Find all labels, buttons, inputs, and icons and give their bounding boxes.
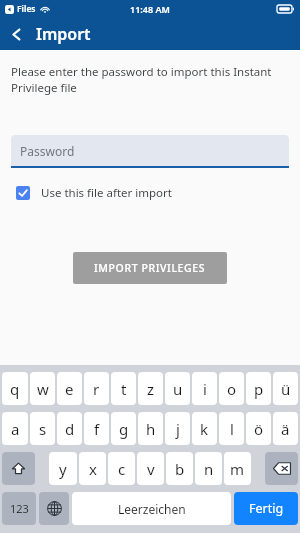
button[interactable]: Change keyboard language — [39, 492, 69, 525]
staticText: c — [118, 459, 126, 479]
button[interactable]: t — [111, 372, 136, 405]
button[interactable]: ü — [273, 372, 298, 405]
staticText: t — [121, 379, 127, 399]
button[interactable]: Shift — [2, 452, 35, 485]
button[interactable]: c — [108, 452, 135, 485]
button[interactable]: o — [219, 372, 244, 405]
staticText: n — [204, 459, 214, 479]
button[interactable]: f — [84, 412, 109, 445]
staticText: h — [146, 419, 156, 439]
staticText: Fertig — [249, 500, 284, 517]
staticText: Files — [17, 3, 36, 15]
button[interactable]: i — [192, 372, 217, 405]
staticText: Please enter the password to import this… — [11, 64, 289, 95]
staticText: l — [230, 419, 234, 439]
button[interactable]: q — [2, 372, 28, 405]
staticText: j — [176, 419, 180, 439]
staticText: y — [59, 459, 67, 479]
staticText: 123 — [10, 501, 29, 516]
staticText: u — [173, 379, 183, 399]
button[interactable]: x — [79, 452, 106, 485]
button[interactable]: g — [111, 412, 136, 445]
button[interactable]: y — [49, 452, 77, 485]
button[interactable]: w — [30, 372, 55, 405]
staticText: g — [119, 419, 129, 439]
staticText: Password — [20, 143, 75, 159]
staticText: m — [230, 459, 245, 479]
button[interactable]: j — [165, 412, 190, 445]
staticText: ü — [281, 379, 291, 399]
button[interactable]: IMPORT PRIVILEGES — [73, 252, 227, 284]
staticText: Use this file after import — [41, 185, 172, 201]
button[interactable]: e — [57, 372, 82, 405]
button[interactable]: b — [166, 452, 193, 485]
staticText: r — [93, 379, 100, 399]
button[interactable]: Back — [0, 18, 32, 50]
staticText: f — [94, 419, 100, 439]
staticText: o — [227, 379, 237, 399]
staticText: 11:48 AM — [130, 3, 170, 15]
staticText: z — [147, 379, 155, 399]
button[interactable]: l — [219, 412, 244, 445]
button[interactable]: k — [192, 412, 217, 445]
button[interactable]: s — [30, 412, 55, 445]
button[interactable]: m — [224, 452, 251, 485]
staticText: p — [254, 379, 264, 399]
button[interactable]: ö — [246, 412, 271, 445]
button[interactable]: a — [2, 412, 28, 445]
staticText: ä — [281, 419, 290, 439]
button[interactable]: u — [165, 372, 190, 405]
button[interactable]: Leerzeichen — [72, 492, 231, 525]
staticText: b — [175, 459, 185, 479]
button[interactable]: d — [57, 412, 82, 445]
button[interactable]: Fertig — [234, 492, 298, 525]
staticText: e — [65, 379, 74, 399]
button[interactable]: Backspace — [265, 452, 298, 485]
button[interactable]: 123 — [2, 492, 36, 525]
staticText: ö — [254, 419, 264, 439]
button[interactable]: p — [246, 372, 271, 405]
button[interactable]: z — [138, 372, 163, 405]
button[interactable]: v — [137, 452, 164, 485]
staticText: a — [11, 419, 20, 439]
button[interactable]: ä — [273, 412, 298, 445]
staticText: s — [39, 419, 47, 439]
button[interactable]: Password — [11, 135, 289, 166]
staticText: x — [89, 459, 97, 479]
staticText: w — [37, 379, 49, 399]
button[interactable]: Use this file after import — [11, 181, 172, 205]
button[interactable]: h — [138, 412, 163, 445]
button[interactable]: r — [84, 372, 109, 405]
staticText: k — [200, 419, 209, 439]
button[interactable]: n — [195, 452, 222, 485]
staticText: i — [203, 379, 207, 399]
staticText: IMPORT PRIVILEGES — [94, 261, 206, 275]
staticText: v — [147, 459, 155, 479]
staticText: d — [65, 419, 75, 439]
staticText: q — [10, 379, 20, 399]
staticText: Leerzeichen — [118, 501, 186, 517]
staticText: Import — [36, 23, 91, 45]
